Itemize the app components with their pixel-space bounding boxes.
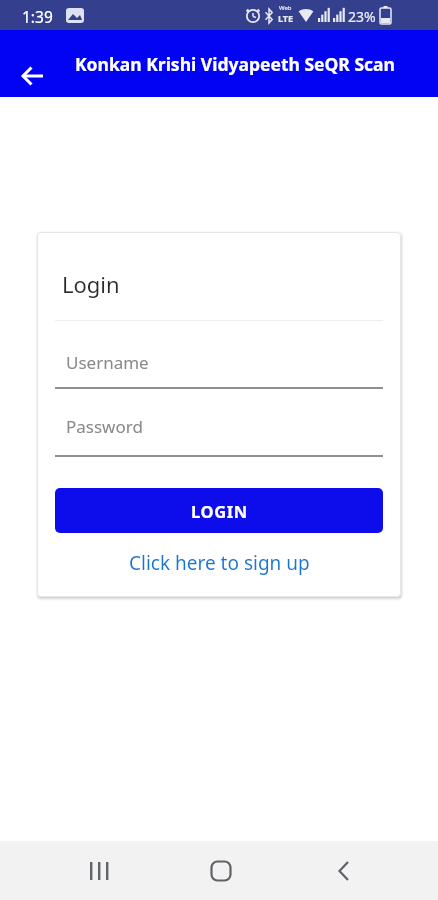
staticText: LTE <box>278 12 294 24</box>
button[interactable]: Click here to sign up <box>55 550 383 576</box>
button[interactable] <box>12 52 56 76</box>
staticText: 1:39 <box>22 6 53 27</box>
button[interactable] <box>75 847 123 895</box>
button[interactable] <box>197 847 245 895</box>
staticText: Web <box>279 4 292 12</box>
button[interactable] <box>320 847 368 895</box>
staticText: Click here to sign up <box>129 550 310 576</box>
staticText: Username <box>66 351 149 374</box>
staticText: Password <box>66 415 143 438</box>
button[interactable]: LOGIN <box>55 488 383 533</box>
staticText: LOGIN <box>191 500 248 522</box>
staticText: Konkan Krishi Vidyapeeth SeQR Scan <box>75 52 395 76</box>
staticText: Login <box>62 269 120 299</box>
staticText: 23% <box>348 7 376 26</box>
